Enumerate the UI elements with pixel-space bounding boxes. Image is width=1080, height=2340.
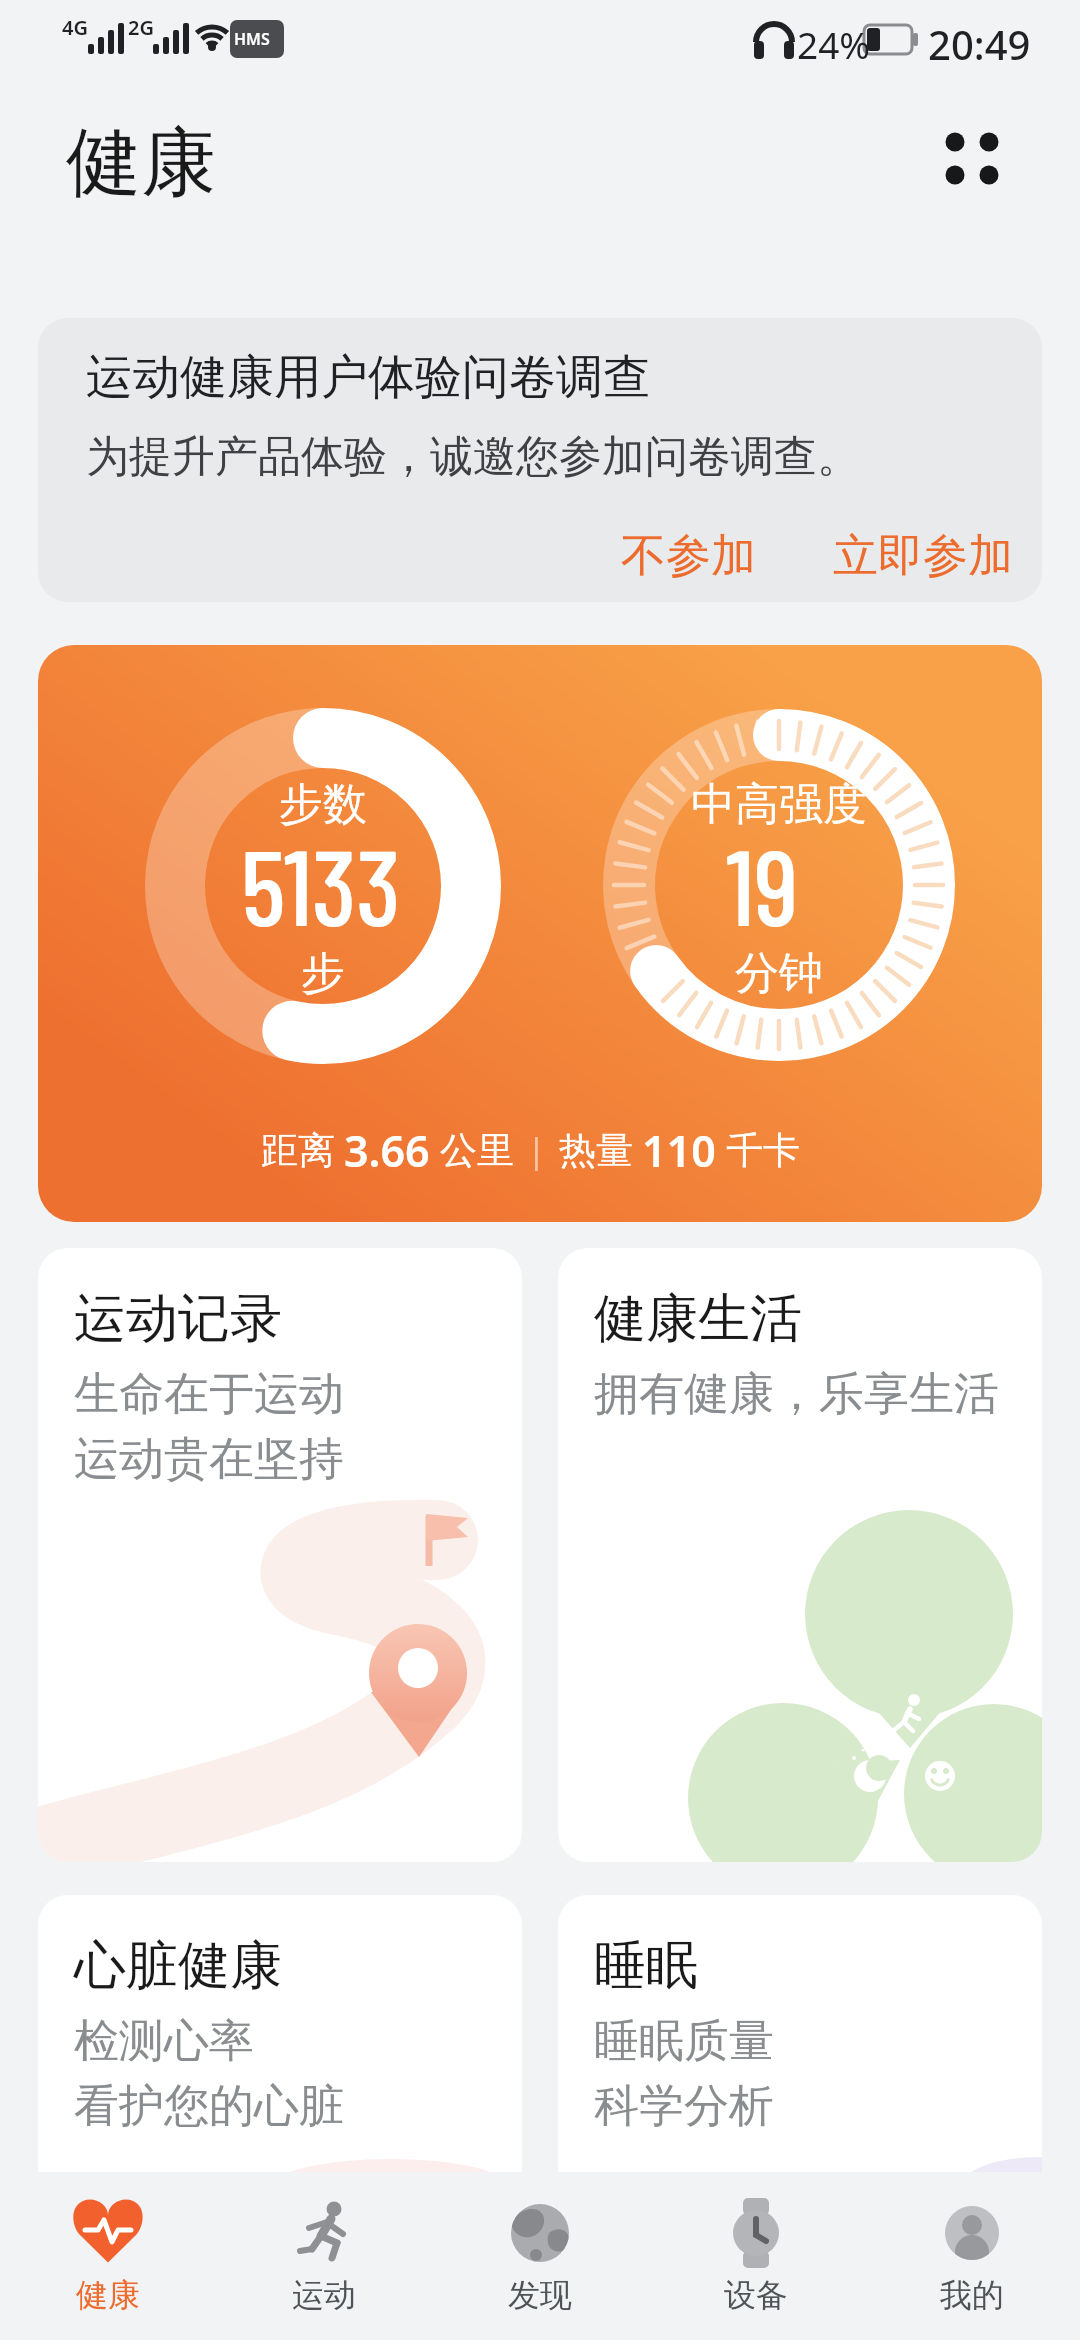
staticText: 健康生活 xyxy=(594,1286,802,1352)
button[interactable]: 发现 xyxy=(445,2172,635,2340)
staticText: 距离 xyxy=(261,1127,335,1174)
staticText: 4G xyxy=(62,14,88,41)
staticText: 睡眠 xyxy=(594,1933,698,1999)
staticText: 运动健康用户体验问卷调查 xyxy=(86,348,650,407)
staticText: 立即参加 xyxy=(833,528,1013,585)
staticText: 20:49 xyxy=(928,17,1031,71)
button[interactable]: 健康 xyxy=(13,2172,203,2340)
staticText: 2G xyxy=(128,14,154,41)
staticText: 5133 xyxy=(241,820,401,947)
button[interactable]: 我的 xyxy=(877,2172,1067,2340)
button[interactable]: 步数 xyxy=(38,645,1042,1222)
button[interactable]: 运动记录 xyxy=(38,1248,522,1862)
button[interactable]: 运动 xyxy=(229,2172,419,2340)
staticText: 看护您的心脏 xyxy=(74,2078,344,2135)
staticText: 运动 xyxy=(292,2275,356,2315)
button[interactable]: 设备 xyxy=(661,2172,851,2340)
staticText: | xyxy=(527,1127,546,1173)
staticText: HMS xyxy=(234,28,270,50)
staticText: 110 xyxy=(642,1121,716,1180)
staticText: 为提升产品体验，诚邀您参加问卷调查。 xyxy=(86,430,860,484)
staticText: 生命在于运动 xyxy=(74,1366,344,1423)
staticText: 分钟 xyxy=(735,946,823,1001)
staticText: 检测心率 xyxy=(74,2013,254,2070)
staticText: 3.66 xyxy=(344,1121,430,1180)
staticText: 步数 xyxy=(279,777,367,832)
staticText: 心脏健康 xyxy=(74,1933,282,1999)
button[interactable] xyxy=(935,120,1010,195)
staticText: 健康 xyxy=(66,116,216,210)
staticText: 健康 xyxy=(76,2275,140,2315)
staticText: 步 xyxy=(301,946,345,1001)
staticText: 不参加 xyxy=(621,528,756,585)
button[interactable]: 心脏健康 xyxy=(38,1895,522,2172)
staticText: 中高强度 xyxy=(691,777,867,832)
staticText: 发现 xyxy=(508,2275,572,2315)
staticText: 运动贵在坚持 xyxy=(74,1431,344,1488)
staticText: 我的 xyxy=(940,2275,1004,2315)
staticText: 24% xyxy=(797,19,871,69)
button[interactable]: 睡眠 xyxy=(558,1895,1042,2172)
staticText: 拥有健康，乐享生活 xyxy=(594,1366,999,1423)
staticText: 千卡 xyxy=(726,1127,800,1174)
button[interactable]: 立即参加 xyxy=(813,520,1033,592)
staticText: 公里 xyxy=(440,1127,514,1174)
staticText: 睡眠质量 xyxy=(594,2013,774,2070)
staticText: 设备 xyxy=(724,2275,788,2315)
staticText: 19 xyxy=(726,820,799,947)
staticText: 运动记录 xyxy=(74,1286,282,1352)
staticText: 热量 xyxy=(559,1127,633,1174)
staticText: 科学分析 xyxy=(594,2078,774,2135)
button[interactable]: 不参加 xyxy=(598,520,778,592)
button[interactable]: 健康生活 xyxy=(558,1248,1042,1862)
